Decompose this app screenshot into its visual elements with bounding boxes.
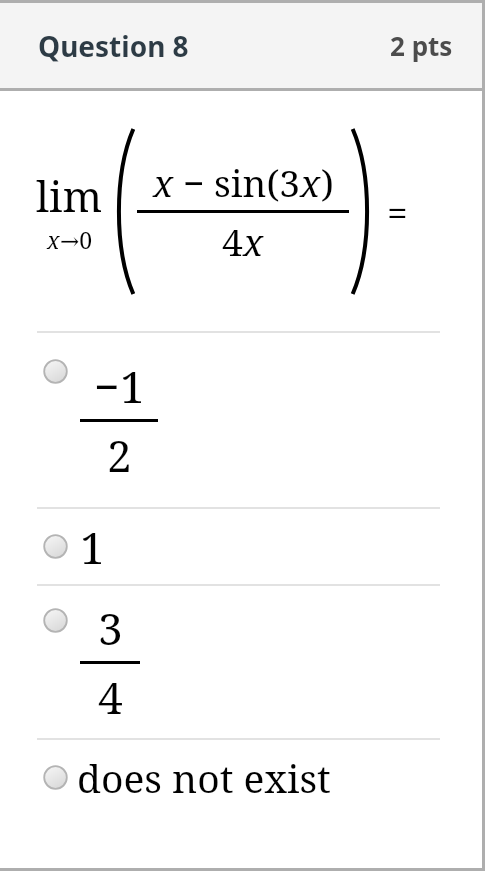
staticText: 3 bbox=[98, 598, 123, 658]
staticText: x bbox=[243, 216, 264, 266]
staticText: = bbox=[387, 186, 408, 236]
other: Select answer does not exist bbox=[43, 765, 68, 790]
button[interactable]: Select answer does not exist bbox=[0, 740, 485, 814]
staticText: ) bbox=[321, 157, 334, 207]
other: Select answer one bbox=[43, 534, 68, 559]
staticText: x bbox=[153, 157, 174, 207]
staticText: 1 bbox=[80, 517, 105, 577]
staticText: 2 bbox=[107, 425, 132, 485]
staticText: x bbox=[300, 157, 321, 207]
button[interactable]: Select answer one bbox=[0, 509, 485, 584]
staticText: x bbox=[47, 224, 60, 255]
staticText: →0 bbox=[60, 224, 93, 255]
button[interactable]: Select answer three quarters bbox=[0, 586, 485, 738]
staticText: 1 bbox=[120, 356, 145, 416]
button[interactable]: Question 8 bbox=[0, 3, 485, 88]
staticText: 4 bbox=[98, 667, 123, 727]
staticText: − bbox=[94, 356, 120, 416]
other: Select answer minus one half bbox=[43, 359, 68, 384]
button[interactable]: Select answer minus one half bbox=[0, 333, 485, 507]
staticText: Question 8 bbox=[38, 27, 189, 65]
staticText: sin(3 bbox=[214, 157, 300, 207]
other: Select answer three quarters bbox=[43, 608, 68, 633]
staticText: − bbox=[183, 157, 205, 207]
staticText: 2 pts bbox=[390, 28, 453, 63]
staticText: lim bbox=[36, 167, 103, 224]
staticText: 4 bbox=[222, 216, 243, 266]
staticText: does not exist bbox=[77, 751, 331, 804]
